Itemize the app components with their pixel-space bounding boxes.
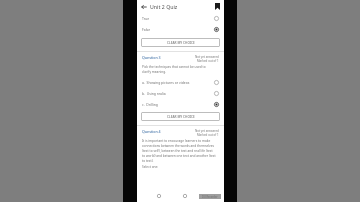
staticText: Marked out of 1: [197, 133, 219, 137]
staticText: Question 4: [142, 129, 161, 134]
staticText: It is important to encourage learners to…: [142, 139, 216, 163]
staticText: False: [142, 27, 151, 32]
button[interactable]: Home: [180, 191, 190, 201]
button[interactable]: False: [137, 24, 224, 35]
staticText: Not yet answered: [195, 129, 219, 133]
staticText: DU Recorder: [202, 195, 218, 199]
staticText: Not yet answered: [195, 55, 219, 59]
button[interactable]: Back: [154, 191, 164, 201]
staticText: Select one:: [142, 165, 159, 169]
staticText: a. Showing pictures or videos: [142, 80, 190, 85]
staticText: Marked out of 1: [197, 59, 219, 63]
button[interactable]: a. Showing pictures or videos: [137, 77, 224, 88]
staticText: True: [142, 16, 150, 21]
button[interactable]: b. Using realia: [137, 88, 224, 99]
staticText: Pick the techniques that cannot be used …: [142, 65, 206, 74]
button[interactable]: Back: [137, 0, 150, 13]
staticText: CLEAR MY CHOICE: [167, 115, 195, 119]
staticText: Unit 2 Quiz: [150, 3, 178, 10]
button[interactable]: Bookmark: [211, 0, 224, 13]
staticText: CLEAR MY CHOICE: [167, 41, 195, 45]
staticText: c. Drilling: [142, 102, 158, 107]
button[interactable]: c. Drilling: [137, 99, 224, 110]
button[interactable]: CLEAR MY CHOICE: [141, 112, 220, 121]
staticText: b. Using realia: [142, 91, 166, 96]
button[interactable]: True: [137, 13, 224, 24]
staticText: Question 3: [142, 55, 161, 60]
button[interactable]: CLEAR MY CHOICE: [141, 38, 220, 47]
